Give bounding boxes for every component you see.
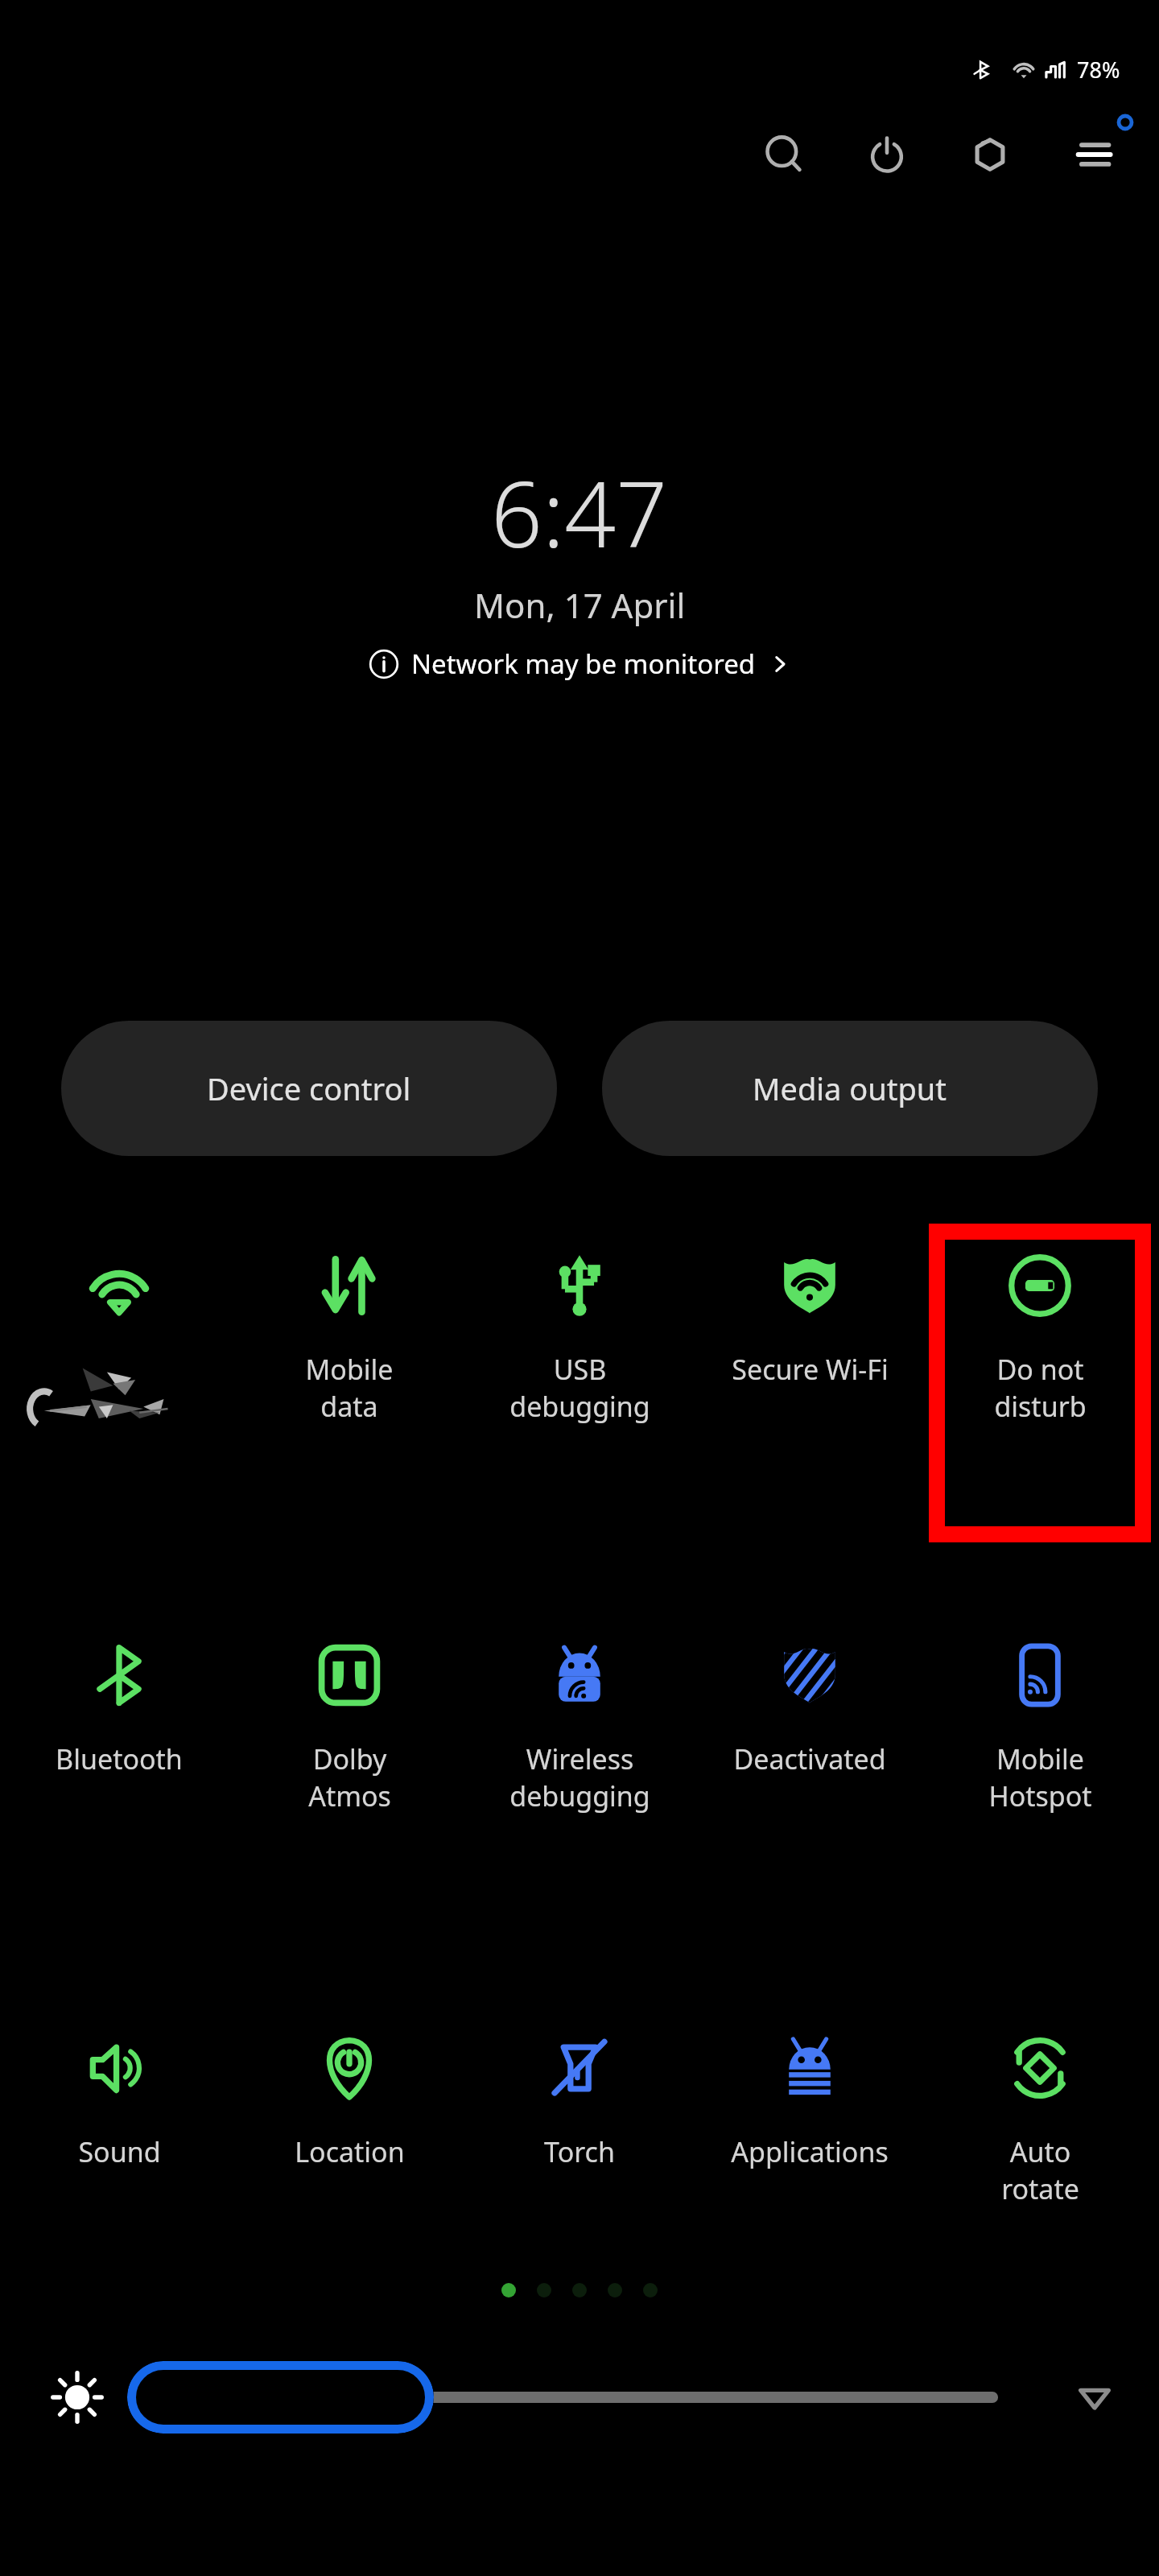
staticText: Do not disturb — [994, 1351, 1087, 1425]
staticText: Wireless debugging — [509, 1740, 650, 1814]
button[interactable]: Media output — [602, 1021, 1098, 1156]
button[interactable]: Applications — [708, 2006, 911, 2170]
staticText: Mon, 17 April — [474, 582, 686, 628]
button[interactable]: Network may be monitored — [361, 642, 798, 685]
staticText: Auto rotate — [1001, 2133, 1079, 2207]
staticText: Secure Wi-Fi — [732, 1351, 889, 1388]
staticText: 78% — [1077, 55, 1120, 85]
button[interactable]: Device control — [61, 1021, 557, 1156]
staticText: Deactivated — [733, 1740, 886, 1777]
staticText: Mobile Hotspot — [988, 1740, 1092, 1814]
staticText: Mobile data — [305, 1351, 394, 1425]
button[interactable]: Expand — [1066, 2368, 1124, 2426]
button[interactable]: Deactivated — [708, 1613, 911, 1777]
button[interactable]: Page 1 — [501, 2283, 516, 2297]
button[interactable]: Search — [750, 121, 818, 188]
staticText: 6:47 — [491, 451, 668, 574]
button[interactable]: Wi-Fi — [18, 1224, 221, 1447]
staticText: Location — [295, 2133, 405, 2170]
button[interactable]: Page 2 — [537, 2283, 551, 2297]
button[interactable] — [127, 2361, 434, 2434]
button[interactable]: USB debugging — [478, 1224, 681, 1425]
button[interactable]: Page 5 — [643, 2283, 658, 2297]
other: Brightness — [48, 2368, 106, 2426]
button[interactable]: Torch — [478, 2006, 681, 2170]
button[interactable]: Location — [248, 2006, 451, 2170]
button[interactable]: Settings — [1059, 121, 1127, 188]
button[interactable]: Power — [853, 121, 921, 188]
staticText: Applications — [731, 2133, 889, 2170]
button[interactable]: Rotate — [956, 121, 1024, 188]
staticText: Dolby Atmos — [308, 1740, 391, 1814]
staticText: USB debugging — [509, 1351, 650, 1425]
staticText: Torch — [544, 2133, 615, 2170]
staticText: Sound — [78, 2133, 161, 2170]
button[interactable]: Page 4 — [608, 2283, 622, 2297]
button[interactable]: Mobile data — [248, 1224, 451, 1425]
staticText: Network may be monitored — [411, 646, 756, 682]
staticText: Device control — [207, 1067, 411, 1109]
staticText: Bluetooth — [56, 1740, 183, 1777]
staticText: Media output — [753, 1067, 947, 1109]
button[interactable]: Dolby Atmos — [248, 1613, 451, 1814]
button[interactable]: Page 3 — [572, 2283, 587, 2297]
button[interactable]: Do not disturb — [938, 1224, 1141, 1425]
button[interactable]: Auto rotate — [938, 2006, 1141, 2207]
button[interactable]: Bluetooth — [18, 1613, 221, 1777]
button[interactable]: Secure Wi-Fi — [708, 1224, 911, 1388]
button[interactable]: Sound — [18, 2006, 221, 2170]
button[interactable]: Wireless debugging — [478, 1613, 681, 1814]
button[interactable]: Mobile Hotspot — [938, 1613, 1141, 1814]
